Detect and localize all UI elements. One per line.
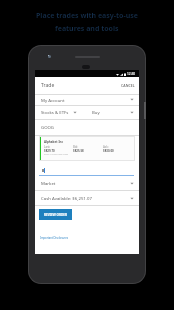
staticText: features and tools	[55, 24, 119, 34]
button[interactable]: REVIEW ORDER	[39, 209, 72, 220]
staticText: Buy	[92, 109, 100, 115]
other: Expand	[73, 111, 77, 114]
staticText: $830.00	[103, 149, 114, 153]
button[interactable]: Cash Available: $6,251.07	[35, 190, 139, 206]
button[interactable]: GOOG	[35, 119, 139, 135]
staticText: $829.70	[44, 149, 55, 153]
other: Expand	[130, 197, 134, 200]
other: Expand	[130, 182, 134, 185]
staticText: Important Disclosures	[40, 236, 68, 240]
button[interactable]: Important Disclosures	[40, 236, 68, 240]
staticText: GOOG	[41, 124, 54, 130]
staticText: Alphabet Inc	[44, 140, 64, 144]
button[interactable]: CANCEL	[121, 83, 135, 88]
staticText: Trade	[41, 82, 55, 89]
button[interactable]: Buy	[86, 105, 139, 119]
button[interactable]: Stocks & ETFs	[35, 105, 82, 119]
staticText: REVIEW ORDER	[44, 213, 68, 217]
staticText: DATA 15 MIN DELAYED	[44, 153, 69, 156]
button[interactable]: Quantity	[39, 166, 134, 175]
staticText: Last:	[44, 145, 51, 149]
button[interactable]: Alphabet Inc	[39, 136, 135, 161]
other: Expand	[130, 98, 134, 101]
button[interactable]: Market	[35, 176, 139, 190]
staticText: Ask:	[103, 145, 109, 149]
staticText: $825.58	[73, 149, 84, 153]
other: Expand	[130, 111, 134, 114]
staticText: Market	[41, 180, 56, 186]
staticText: Bid:	[73, 145, 79, 149]
staticText: Place trades with easy-to-use	[36, 11, 138, 21]
button[interactable]: My Account	[35, 94, 139, 105]
staticText: Stocks & ETFs	[41, 109, 69, 115]
staticText: Cash Available: $6,251.07	[41, 195, 92, 201]
staticText: 12:30	[127, 72, 136, 76]
staticText: My Account	[41, 97, 65, 103]
staticText: CANCEL	[121, 83, 135, 88]
